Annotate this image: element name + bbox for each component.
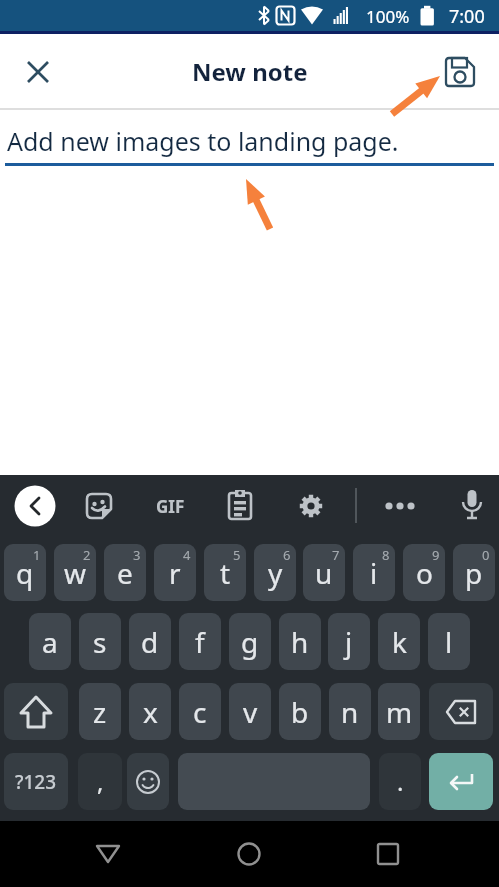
button[interactable] [77,484,121,528]
staticText: b [291,693,309,731]
staticText: t [220,554,231,592]
button[interactable] [127,753,169,810]
staticText: 8 [382,546,390,564]
staticText: , [97,765,104,798]
button[interactable]: k [378,613,420,670]
staticText: 5 [233,546,241,564]
button[interactable]: ?123 [4,753,68,810]
staticText: x [143,693,158,731]
staticText: New note [192,55,308,88]
button[interactable] [437,49,483,95]
button[interactable]: r [154,544,196,601]
button[interactable] [227,832,271,876]
staticText: v [243,693,258,731]
button[interactable] [86,832,130,876]
button[interactable]: j [328,613,370,670]
staticText: Add new images to landing page. [7,124,399,158]
button[interactable]: i [353,544,395,601]
staticText: l [445,623,453,661]
button[interactable]: . [379,753,421,810]
staticText: q [16,554,34,592]
button[interactable]: y [254,544,296,601]
staticText: 0 [482,546,490,564]
staticText: h [291,623,309,661]
staticText: u [315,554,333,592]
button[interactable] [366,832,410,876]
button[interactable]: z [79,683,121,740]
staticText: ?123 [15,769,57,795]
button[interactable]: a [29,613,71,670]
button[interactable]: b [279,683,321,740]
staticText: 9 [432,546,440,564]
button[interactable] [429,753,493,810]
button[interactable] [450,484,494,528]
button[interactable]: q [4,544,46,601]
staticText: GIF [156,495,185,518]
button[interactable] [218,484,262,528]
staticText: 4 [183,546,191,564]
staticText: k [392,623,407,661]
staticText: s [93,623,107,661]
button[interactable]: s [79,613,121,670]
button[interactable]: n [329,683,371,740]
button[interactable]: h [279,613,321,670]
button[interactable] [4,683,68,740]
staticText: 1 [33,546,41,564]
staticText: m [386,693,413,731]
staticText: . [397,765,404,798]
staticText: c [193,693,207,731]
button[interactable]: u [303,544,345,601]
staticText: 2 [83,546,91,564]
button[interactable] [429,683,493,740]
staticText: f [195,623,205,661]
staticText: 7 [332,546,340,564]
button[interactable]: m [378,683,420,740]
staticText: d [141,623,159,661]
staticText: i [370,554,378,592]
button[interactable]: d [129,613,171,670]
button[interactable]: l [428,613,470,670]
button[interactable]: e [104,544,146,601]
button[interactable]: p [453,544,495,601]
button[interactable]: v [229,683,271,740]
staticText: r [169,554,181,592]
button[interactable]: , [78,753,122,810]
staticText: n [341,693,359,731]
staticText: j [345,623,353,661]
button[interactable]: g [229,613,271,670]
staticText: 6 [283,546,291,564]
staticText: g [241,623,259,661]
staticText: e [117,554,133,592]
button[interactable]: c [179,683,221,740]
staticText: p [465,554,483,592]
staticText: 3 [133,546,141,564]
button[interactable] [13,484,57,528]
button[interactable] [16,50,60,94]
button[interactable]: w [54,544,96,601]
button[interactable]: t [204,544,246,601]
staticText: 100% [366,5,410,28]
button[interactable]: o [403,544,445,601]
button[interactable]: GIF [148,484,192,528]
staticText: a [42,623,58,661]
staticText: z [93,693,107,731]
staticText: 7:00 [449,4,485,29]
button[interactable]: x [129,683,171,740]
button[interactable] [289,484,333,528]
staticText: y [268,554,283,592]
button[interactable]: f [179,613,221,670]
button[interactable] [378,484,422,528]
staticText: o [416,554,433,592]
staticText: w [64,554,87,592]
